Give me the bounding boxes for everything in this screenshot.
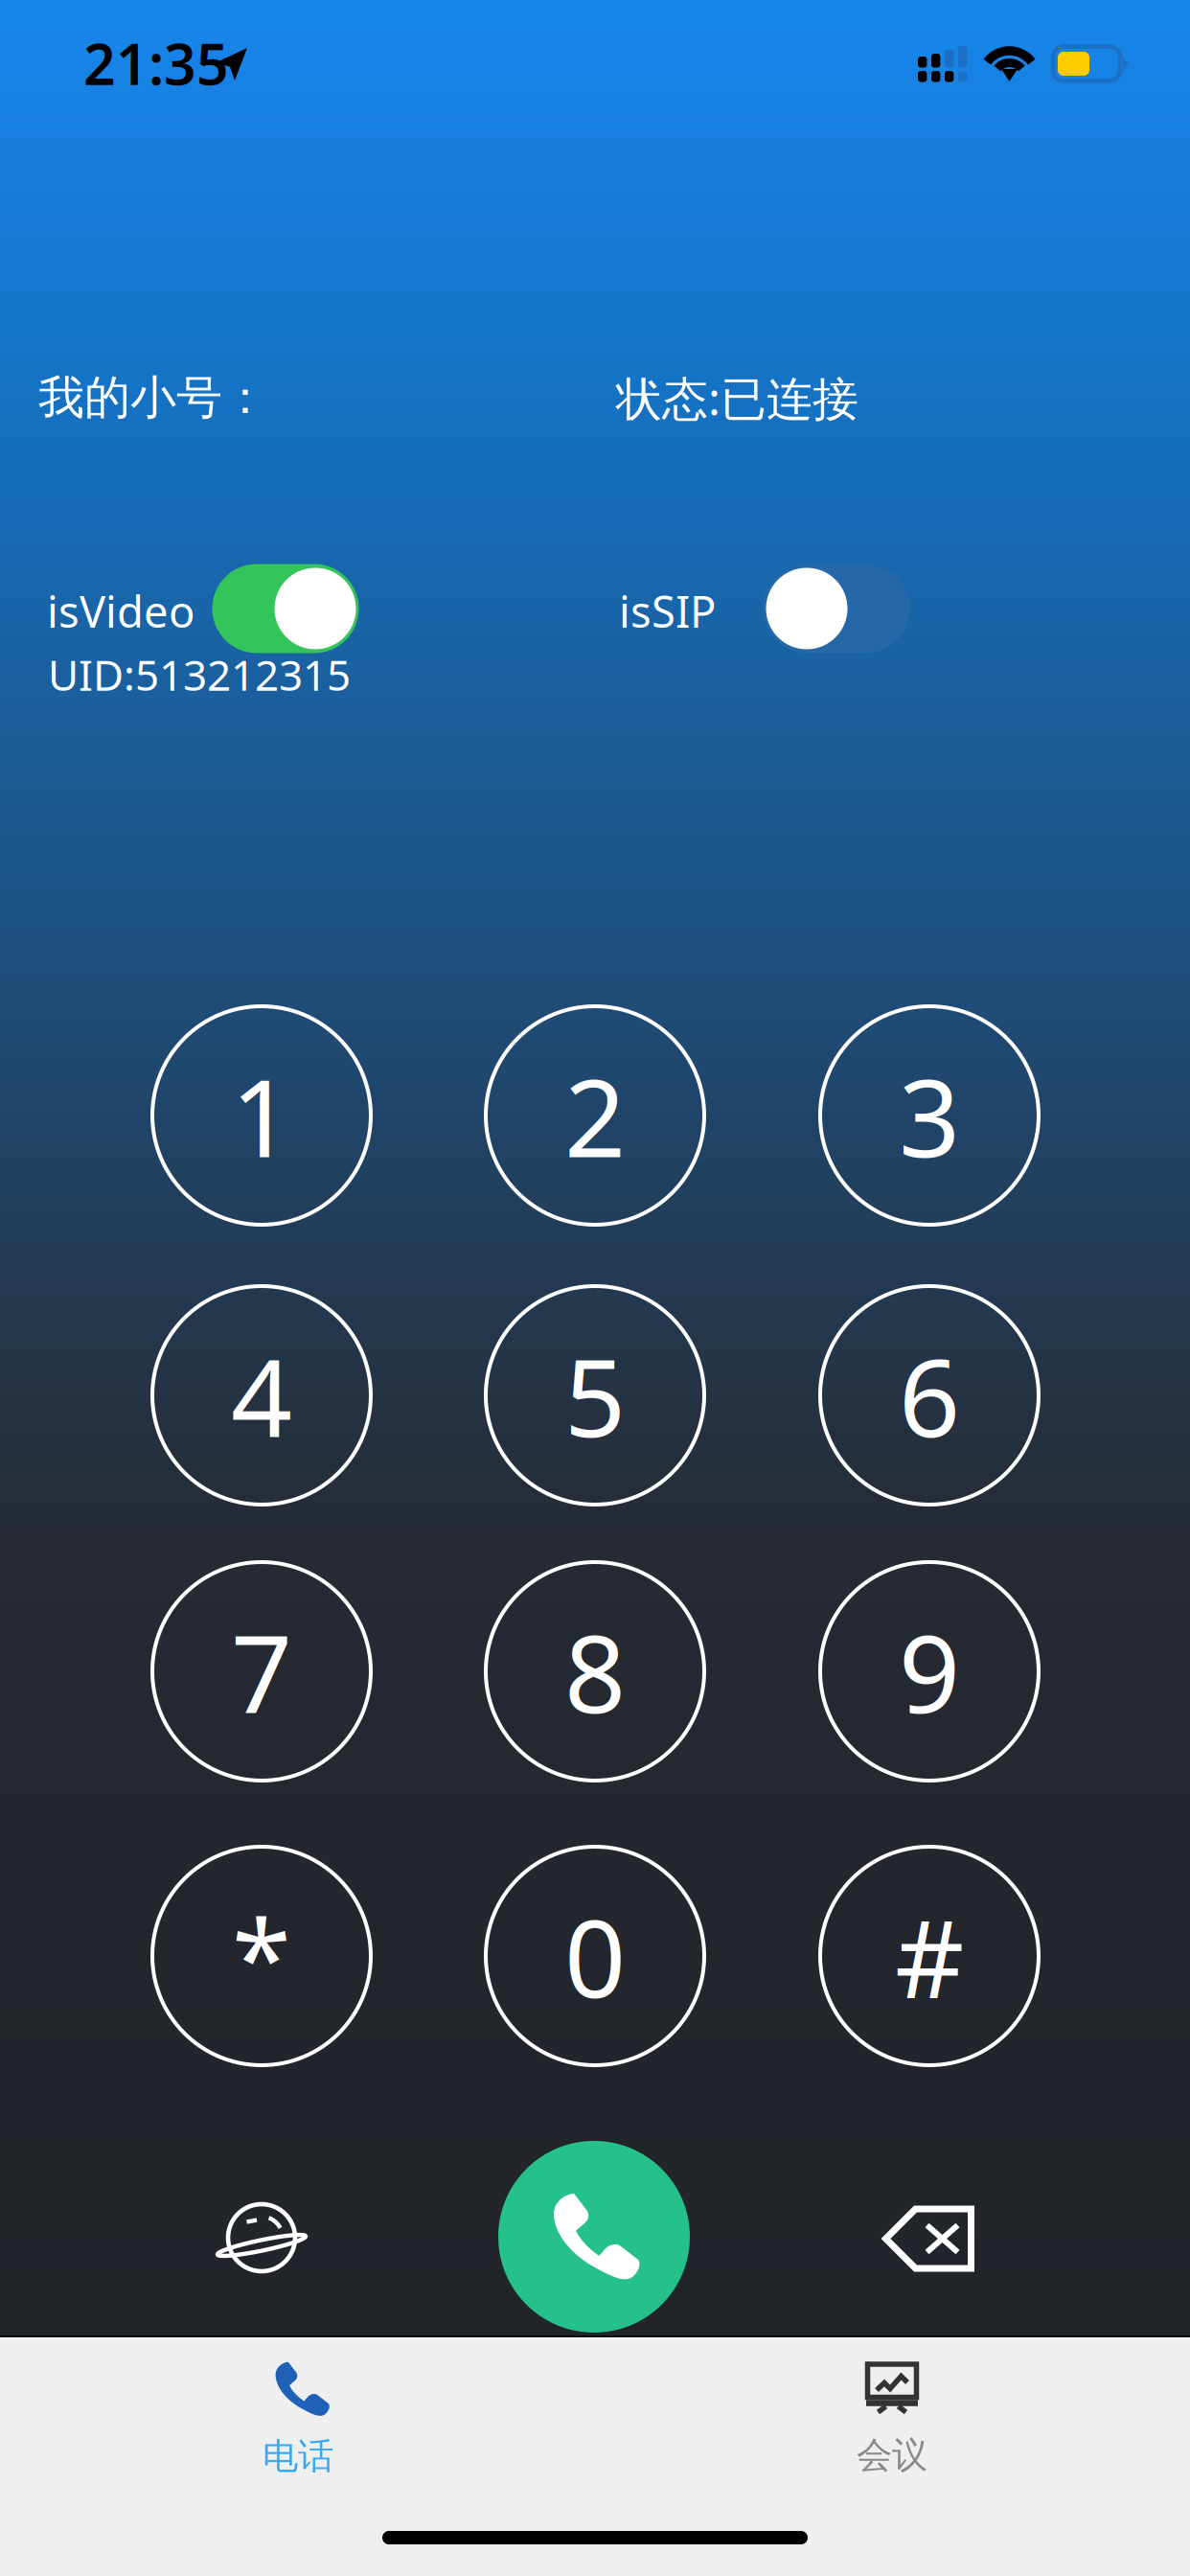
button[interactable]: 8 bbox=[485, 1561, 705, 1782]
staticText: 会议 bbox=[857, 2433, 927, 2477]
staticText: 1 bbox=[231, 1044, 292, 1187]
staticText: 4 bbox=[231, 1324, 292, 1467]
button[interactable]: # bbox=[819, 1846, 1040, 2066]
button[interactable]: Delete bbox=[881, 2204, 976, 2273]
staticText: 7 bbox=[231, 1600, 292, 1743]
button[interactable]: 7 bbox=[151, 1561, 372, 1782]
button[interactable]: 4 bbox=[151, 1285, 372, 1506]
button[interactable]: International bbox=[216, 2195, 308, 2279]
button[interactable]: 会议 bbox=[734, 2346, 1050, 2509]
button[interactable]: * bbox=[151, 1846, 372, 2066]
button[interactable]: 1 bbox=[151, 1005, 372, 1226]
staticText: 电话 bbox=[263, 2434, 333, 2478]
staticText: 6 bbox=[899, 1324, 960, 1467]
staticText: UID:513212315 bbox=[48, 646, 351, 702]
button[interactable] bbox=[763, 564, 910, 653]
button[interactable]: 5 bbox=[485, 1285, 705, 1506]
staticText: 3 bbox=[899, 1044, 960, 1187]
staticText: 2 bbox=[564, 1044, 626, 1187]
staticText: 21:35 bbox=[83, 26, 229, 101]
staticText: 状态:已连接 bbox=[616, 367, 858, 428]
button[interactable]: 9 bbox=[819, 1561, 1040, 1782]
staticText: 9 bbox=[899, 1600, 960, 1743]
staticText: isSIP bbox=[619, 582, 716, 640]
button[interactable]: 3 bbox=[819, 1005, 1040, 1226]
staticText: 0 bbox=[564, 1885, 626, 2027]
staticText: 我的小号： bbox=[38, 369, 268, 426]
button[interactable]: 0 bbox=[485, 1846, 705, 2066]
button[interactable]: 2 bbox=[485, 1005, 705, 1226]
staticText: # bbox=[895, 1885, 964, 2027]
button[interactable]: 6 bbox=[819, 1285, 1040, 1506]
button[interactable]: Call bbox=[498, 2141, 690, 2333]
button[interactable] bbox=[212, 564, 359, 653]
staticText: 8 bbox=[564, 1600, 626, 1743]
staticText: 5 bbox=[564, 1324, 626, 1467]
staticText: * bbox=[232, 1885, 291, 2027]
button[interactable]: 电话 bbox=[140, 2357, 456, 2520]
staticText: isVideo bbox=[47, 582, 195, 640]
